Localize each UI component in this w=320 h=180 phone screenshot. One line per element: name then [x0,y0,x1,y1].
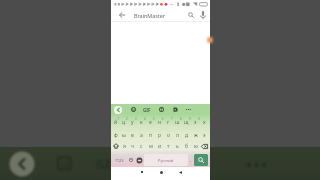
staticText: б [185,143,188,150]
button[interactable]: р [155,128,164,140]
button[interactable]: а [137,128,146,140]
button[interactable]: Search [194,154,208,166]
button[interactable]: ч [128,140,137,152]
button[interactable]: х [200,115,209,128]
staticText: 1 [118,117,120,121]
staticText: з [194,119,197,126]
button[interactable]: 4 [137,115,146,128]
staticText: т [167,143,170,150]
staticText: л [176,132,179,139]
button[interactable]: Settings [171,105,180,114]
button[interactable]: Change language [135,154,144,166]
staticText: г [167,119,170,126]
button[interactable]: ь [173,140,182,152]
button[interactable]: . [188,154,194,166]
button[interactable]: о [164,128,173,140]
button[interactable]: 9 [182,115,191,128]
button[interactable]: м [146,140,155,152]
button[interactable]: 8 [173,115,182,128]
staticText: GIF [143,107,151,113]
staticText: м [149,143,153,150]
button[interactable]: Back [117,10,127,20]
button[interactable]: б [182,140,191,152]
staticText: ц [122,119,126,126]
button[interactable]: 6 [155,115,164,128]
button[interactable]: т [164,140,173,152]
staticText: GIF [96,156,116,172]
staticText: к [140,119,143,126]
button[interactable]: 0 [191,115,200,128]
staticText: 8 [180,117,182,121]
button[interactable]: Stickers [129,105,138,114]
staticText: ы [122,132,126,139]
staticText: ф [114,132,118,139]
button[interactable]: э [200,128,209,140]
staticText: д [185,132,189,139]
staticText: р [158,132,162,139]
button[interactable]: Clipboard [157,105,166,114]
button[interactable]: ф [112,128,120,140]
staticText: а [140,132,143,139]
staticText: н [158,119,162,126]
button[interactable]: Backspace [200,140,209,152]
button[interactable]: GIF [143,107,151,113]
button[interactable]: п [146,128,155,140]
button[interactable]: ю [191,140,200,152]
staticText: я [123,143,126,150]
staticText: ш [175,119,180,126]
staticText: ж [194,132,198,139]
staticText: 3 [135,117,137,121]
button[interactable]: ы [120,128,128,140]
staticText: 4 [144,117,146,121]
button[interactable]: Voice search [198,10,208,20]
staticText: . [190,157,192,164]
staticText: е [149,119,152,126]
button[interactable]: 5 [146,115,155,128]
staticText: в [131,132,134,139]
button[interactable]: More options [184,105,193,114]
staticText: э [203,132,206,139]
button[interactable]: Shift [112,140,120,152]
staticText: о [167,132,170,139]
button[interactable]: Symbols [112,154,126,166]
staticText: с [140,143,143,150]
button[interactable]: д [182,128,191,140]
button[interactable]: Русский [144,154,188,166]
staticText: 2 [126,117,128,121]
staticText: ь [176,143,179,150]
button[interactable]: ж [191,128,200,140]
button[interactable]: Emoji [126,154,135,166]
staticText: 0 [198,117,200,121]
staticText: щ [184,119,189,126]
button[interactable]: с [137,140,146,152]
button[interactable]: я [120,140,128,152]
staticText: х [203,119,206,126]
staticText: 5 [153,117,155,121]
staticText: Русский [158,158,174,163]
staticText: ч [131,143,134,150]
button[interactable]: л [173,128,182,140]
button[interactable]: 2 [120,115,128,128]
staticText: ?123 [115,158,124,163]
button[interactable]: 3 [128,115,137,128]
staticText: ю [194,143,198,150]
button[interactable]: Search [186,10,196,20]
staticText: и [158,143,162,150]
button[interactable]: 1 [112,115,120,128]
button[interactable]: Close toolbar [114,106,122,114]
button[interactable]: в [128,128,137,140]
button[interactable]: Home [156,167,166,177]
staticText: у [131,119,134,126]
staticText: 7 [171,117,173,121]
staticText: 9 [189,117,191,121]
staticText: BrainMaster [134,12,166,19]
staticText: 6 [162,117,164,121]
button[interactable]: Recents [137,167,147,177]
button[interactable]: Back [175,167,185,177]
staticText: й [114,119,118,126]
button[interactable]: и [155,140,164,152]
button[interactable]: 7 [164,115,173,128]
staticText: п [149,132,153,139]
